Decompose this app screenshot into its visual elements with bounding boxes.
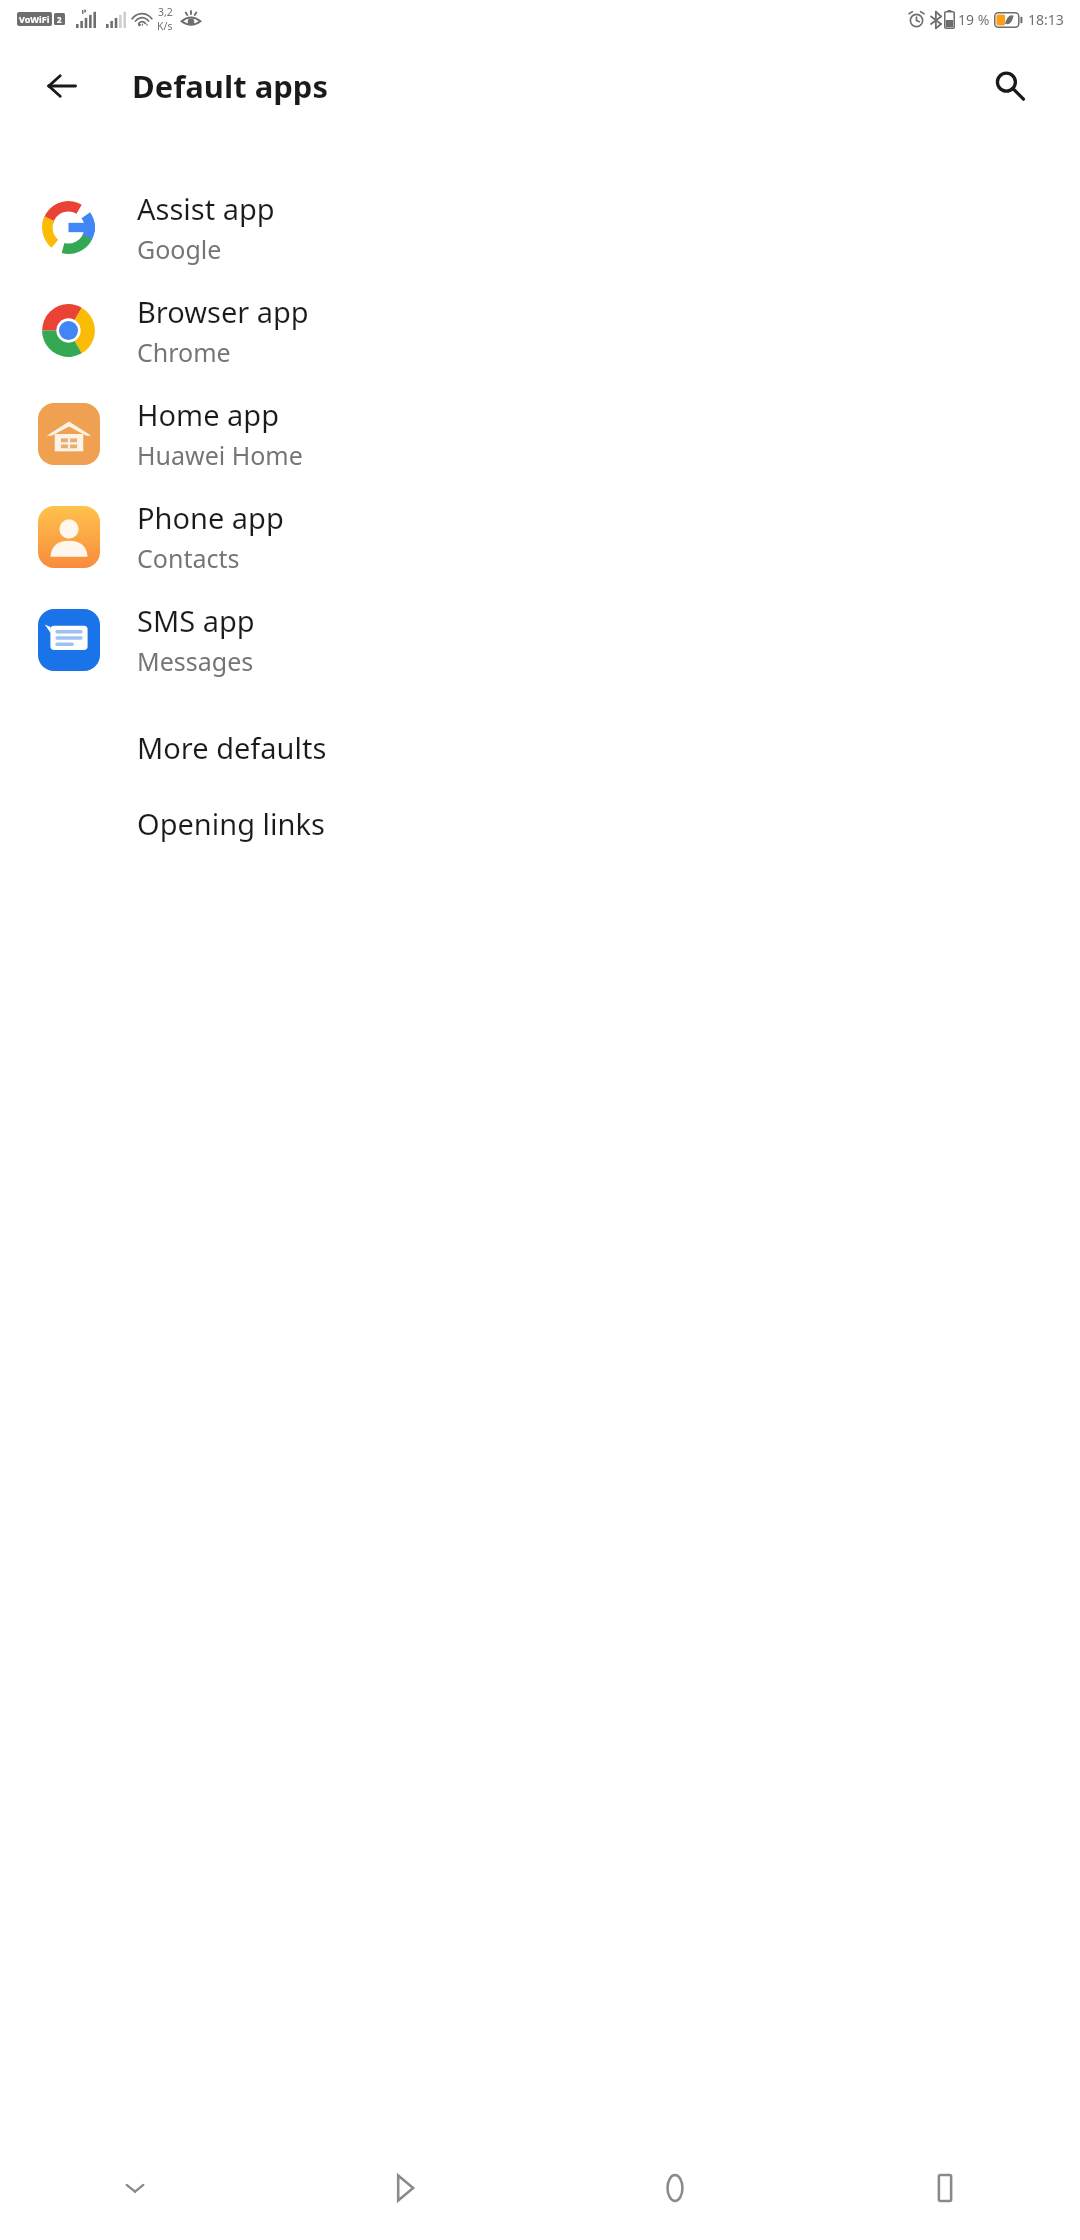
button[interactable]: Phone app xyxy=(0,485,1080,588)
button[interactable]: Browser app xyxy=(0,279,1080,382)
button[interactable]: Home app xyxy=(0,382,1080,485)
staticText: Default apps xyxy=(132,65,328,107)
staticText: Huawei Home xyxy=(137,438,303,472)
button[interactable]: SMS app xyxy=(0,588,1080,691)
staticText: 2 xyxy=(57,14,62,25)
button[interactable]: Hide navigation bar xyxy=(0,2136,270,2240)
staticText: Assist app xyxy=(137,189,275,228)
button[interactable]: More defaults xyxy=(0,709,1080,785)
button[interactable]: Recent apps xyxy=(810,2136,1080,2240)
staticText: Contacts xyxy=(137,541,240,575)
staticText: Chrome xyxy=(137,335,231,369)
staticText: Opening links xyxy=(137,804,325,843)
staticText: 18:13 xyxy=(1028,10,1064,29)
staticText: SMS app xyxy=(137,601,255,640)
button[interactable]: Assist app xyxy=(0,176,1080,279)
staticText: Phone app xyxy=(137,498,284,537)
button[interactable]: Home xyxy=(540,2136,810,2240)
button[interactable]: Back xyxy=(30,54,94,118)
staticText: Messages xyxy=(137,644,254,678)
staticText: Home app xyxy=(137,395,279,434)
button[interactable]: Opening links xyxy=(0,785,1080,861)
button[interactable]: Back xyxy=(270,2136,540,2240)
button[interactable]: Search xyxy=(978,54,1042,118)
staticText: Browser app xyxy=(137,292,309,331)
staticText: VoWiFi xyxy=(19,13,50,25)
staticText: More defaults xyxy=(137,728,327,767)
staticText: 19 % xyxy=(958,10,990,29)
staticText: 3,2 xyxy=(158,5,173,19)
staticText: K/s xyxy=(157,19,173,33)
staticText: Google xyxy=(137,232,222,266)
